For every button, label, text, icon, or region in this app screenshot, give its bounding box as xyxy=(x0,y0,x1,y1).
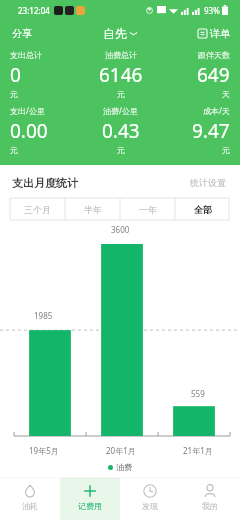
staticText: 元 xyxy=(117,89,125,99)
staticText: 三个月 xyxy=(24,204,51,215)
button[interactable]: 半年 xyxy=(65,198,120,220)
staticText: 自先 xyxy=(103,26,127,41)
staticText: 0 xyxy=(10,62,21,88)
staticText: 0.43 xyxy=(102,118,140,144)
button[interactable]: 分享 xyxy=(0,23,44,44)
other: 发现 xyxy=(143,484,157,498)
other: 油耗 xyxy=(23,484,37,498)
staticText: 分享 xyxy=(12,27,32,40)
staticText: 统计设置 xyxy=(190,177,226,188)
staticText: 我的 xyxy=(202,501,218,511)
staticText: 元 xyxy=(10,145,18,155)
button[interactable]: 详单 xyxy=(188,23,240,44)
staticText: 支出/公里 xyxy=(10,105,45,116)
staticText: 9.47 xyxy=(192,118,230,144)
button[interactable]: 油耗 xyxy=(0,478,60,520)
staticText: 半年 xyxy=(84,204,102,215)
staticText: 元 xyxy=(10,89,18,99)
staticText: 支出月度统计 xyxy=(12,176,78,190)
button[interactable]: 我的 xyxy=(180,478,240,520)
staticText: 20年1月 xyxy=(106,445,136,456)
staticText: 天 xyxy=(222,89,230,99)
staticText: 成本/天 xyxy=(203,105,230,116)
staticText: 详单 xyxy=(210,27,230,40)
staticText: 一年 xyxy=(139,204,157,215)
staticText: 1985 xyxy=(34,310,53,321)
button[interactable]: 一年 xyxy=(120,198,175,220)
staticText: 油费/公里 xyxy=(103,105,138,116)
button[interactable]: 三个月 xyxy=(10,198,65,220)
staticText: 21年1月 xyxy=(183,445,213,456)
other: 我的 xyxy=(203,484,217,498)
staticText: 跟伴天数 xyxy=(198,50,230,60)
staticText: 元 xyxy=(222,145,230,155)
staticText: 23:12:04 xyxy=(18,5,50,16)
staticText: 559 xyxy=(191,388,205,399)
button[interactable]: 全部 xyxy=(175,198,230,220)
button[interactable]: 记费用 xyxy=(60,478,120,520)
button[interactable]: 统计设置 xyxy=(188,175,228,190)
staticText: 油费总计 xyxy=(105,50,137,60)
button[interactable]: 发现 xyxy=(120,478,180,520)
staticText: 6146 xyxy=(99,62,143,88)
staticText: 19年5月 xyxy=(29,445,59,456)
staticText: 油费 xyxy=(116,462,132,472)
staticText: 元 xyxy=(117,145,125,155)
staticText: 发现 xyxy=(142,501,158,511)
staticText: 记费用 xyxy=(78,501,102,511)
button[interactable]: 自先 xyxy=(99,22,141,45)
staticText: 649 xyxy=(197,62,230,88)
staticText: 油耗 xyxy=(22,501,38,511)
staticText: 93% xyxy=(204,5,220,16)
staticText: 支出总计 xyxy=(10,50,42,60)
staticText: 0.00 xyxy=(10,118,48,144)
other: 记费用 xyxy=(83,484,97,498)
staticText: 3600 xyxy=(111,224,130,235)
staticText: 全部 xyxy=(194,204,212,215)
